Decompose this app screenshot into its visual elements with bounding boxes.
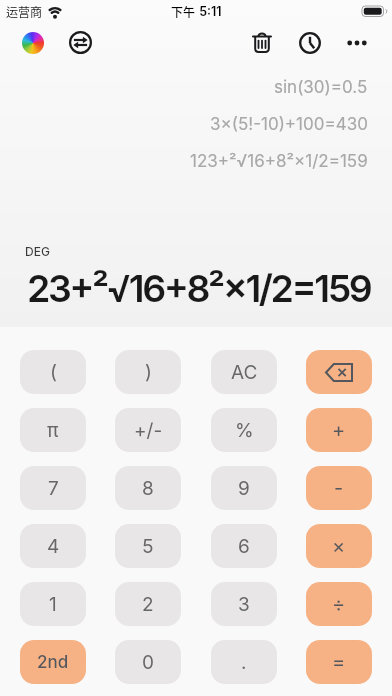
staticText: 2nd — [37, 652, 69, 673]
staticText: ) — [145, 361, 152, 384]
staticText: 3 — [238, 593, 250, 616]
button[interactable]: 5 — [115, 524, 181, 568]
staticText: 5:11 — [196, 4, 222, 19]
button[interactable]: 8 — [115, 466, 181, 510]
staticText: 2 — [142, 593, 154, 616]
button[interactable]: 7 — [20, 466, 86, 510]
staticText: 7 — [48, 477, 59, 500]
button[interactable]: AC — [211, 350, 277, 394]
staticText: 8 — [142, 477, 154, 500]
staticText: + — [332, 418, 346, 442]
staticText: ÷ — [332, 592, 346, 616]
staticText: . — [241, 651, 247, 674]
staticText: - — [334, 476, 344, 500]
staticText: ( — [50, 361, 57, 384]
button[interactable]: ( — [20, 350, 86, 394]
button[interactable]: 1 — [20, 582, 86, 626]
button[interactable] — [347, 33, 367, 53]
staticText: 下午 — [171, 3, 196, 20]
button[interactable]: - — [306, 466, 372, 510]
staticText: 6 — [238, 535, 250, 558]
staticText: AC — [231, 361, 258, 384]
button[interactable]: +/- — [115, 408, 181, 452]
staticText: 4 — [47, 535, 60, 558]
button[interactable]: 6 — [211, 524, 277, 568]
button[interactable] — [252, 32, 272, 54]
staticText: sin(30)=0.5 — [274, 77, 368, 98]
button[interactable]: ) — [115, 350, 181, 394]
staticText: 0 — [142, 651, 154, 674]
staticText: 运营商 — [6, 3, 43, 20]
staticText: 9 — [238, 477, 250, 500]
staticText: 3×(5!-10)+100=430 — [210, 114, 368, 135]
staticText: = — [332, 650, 346, 674]
staticText: × — [332, 534, 346, 558]
button[interactable] — [306, 350, 372, 394]
button[interactable]: % — [211, 408, 277, 452]
button[interactable]: ÷ — [306, 582, 372, 626]
button[interactable]: 4 — [20, 524, 86, 568]
button[interactable]: 9 — [211, 466, 277, 510]
button[interactable]: 0 — [115, 640, 181, 684]
button[interactable]: × — [306, 524, 372, 568]
button[interactable]: = — [306, 640, 372, 684]
button[interactable] — [22, 32, 44, 54]
button[interactable]: 2nd — [20, 640, 86, 684]
button[interactable]: + — [306, 408, 372, 452]
staticText: π — [47, 419, 59, 442]
button[interactable]: 3 — [211, 582, 277, 626]
button[interactable]: π — [20, 408, 86, 452]
staticText: DEG — [25, 244, 50, 259]
staticText: % — [235, 419, 254, 442]
staticText: 5 — [142, 535, 154, 558]
button[interactable] — [69, 31, 92, 54]
button[interactable] — [299, 32, 321, 54]
button[interactable]: 2 — [115, 582, 181, 626]
button[interactable]: . — [211, 640, 277, 684]
staticText: 23+²√16+8²×1/2=159 — [27, 266, 371, 311]
staticText: 123+²√16+8²×1/2=159 — [190, 151, 368, 172]
staticText: 1 — [49, 593, 57, 616]
staticText: +/- — [134, 419, 163, 442]
